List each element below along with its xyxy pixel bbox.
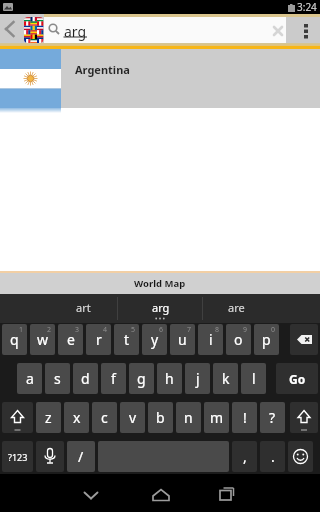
- button[interactable]: n: [176, 402, 201, 433]
- button[interactable]: c: [92, 402, 117, 433]
- staticText: m: [210, 408, 224, 427]
- button[interactable]: arg: [44, 17, 286, 43]
- button[interactable]: art: [0, 294, 118, 323]
- button[interactable]: a: [17, 363, 42, 394]
- button[interactable]: i: [198, 324, 223, 355]
- staticText: 1: [19, 325, 24, 335]
- button[interactable]: !: [232, 402, 257, 433]
- staticText: ?: [269, 408, 276, 427]
- button[interactable]: q: [2, 324, 27, 355]
- button[interactable]: s: [45, 363, 70, 394]
- staticText: s: [54, 369, 61, 388]
- button[interactable]: x: [64, 402, 89, 433]
- button[interactable]: h: [157, 363, 182, 394]
- staticText: w: [37, 330, 49, 349]
- button[interactable]: ,: [232, 441, 257, 472]
- staticText: z: [45, 408, 52, 427]
- button[interactable]: u: [170, 324, 195, 355]
- button[interactable]: m: [204, 402, 229, 433]
- button[interactable]: [0, 14, 44, 43]
- staticText: 0: [271, 325, 276, 335]
- staticText: i: [209, 330, 213, 349]
- button[interactable]: w: [30, 324, 55, 355]
- staticText: 7: [187, 325, 192, 335]
- button[interactable]: p: [254, 324, 279, 355]
- button[interactable]: z: [36, 402, 61, 433]
- button[interactable]: v: [120, 402, 145, 433]
- staticText: d: [81, 369, 90, 388]
- button[interactable]: t: [114, 324, 139, 355]
- staticText: art: [76, 300, 91, 315]
- button[interactable]: [290, 402, 318, 433]
- staticText: 8: [215, 325, 220, 335]
- button[interactable]: are: [203, 294, 320, 323]
- button[interactable]: World Map: [0, 273, 320, 294]
- staticText: 5: [131, 325, 136, 335]
- staticText: 3: [75, 325, 80, 335]
- button[interactable]: [290, 324, 318, 355]
- button[interactable]: ?123: [2, 441, 33, 472]
- staticText: b: [156, 408, 165, 427]
- staticText: ,: [243, 447, 247, 466]
- button[interactable]: b: [148, 402, 173, 433]
- button[interactable]: o: [226, 324, 251, 355]
- staticText: ?123: [8, 451, 28, 463]
- button[interactable]: Argentina: [0, 49, 320, 108]
- button[interactable]: k: [213, 363, 238, 394]
- staticText: p: [262, 330, 271, 349]
- staticText: a: [26, 369, 34, 388]
- staticText: c: [101, 408, 108, 427]
- staticText: y: [151, 330, 159, 349]
- staticText: o: [234, 330, 243, 349]
- button[interactable]: Go: [276, 363, 318, 394]
- staticText: arg: [64, 22, 87, 41]
- staticText: l: [252, 369, 256, 388]
- staticText: h: [165, 369, 174, 388]
- staticText: !: [243, 408, 247, 427]
- button[interactable]: .: [260, 441, 285, 472]
- staticText: 6: [159, 325, 164, 335]
- staticText: /: [78, 447, 84, 466]
- staticText: g: [137, 369, 146, 388]
- button[interactable]: ?: [260, 402, 285, 433]
- button[interactable]: j: [185, 363, 210, 394]
- button[interactable]: f: [101, 363, 126, 394]
- button[interactable]: arg: [118, 294, 203, 323]
- staticText: r: [96, 330, 102, 349]
- staticText: 9: [243, 325, 248, 335]
- staticText: Argentina: [75, 62, 130, 77]
- staticText: n: [184, 408, 193, 427]
- staticText: World Map: [134, 277, 186, 290]
- staticText: k: [222, 369, 230, 388]
- button[interactable]: [286, 17, 320, 43]
- button[interactable]: g: [129, 363, 154, 394]
- staticText: t: [124, 330, 130, 349]
- staticText: v: [129, 408, 137, 427]
- staticText: x: [73, 408, 81, 427]
- staticText: are: [228, 300, 245, 315]
- staticText: j: [196, 369, 200, 388]
- button[interactable]: y: [142, 324, 167, 355]
- button[interactable]: [0, 474, 106, 512]
- button[interactable]: [213, 474, 320, 512]
- button[interactable]: l: [241, 363, 266, 394]
- button[interactable]: [2, 402, 33, 433]
- staticText: 3:24: [297, 0, 317, 14]
- button[interactable]: [106, 474, 213, 512]
- button[interactable]: [36, 441, 64, 472]
- button[interactable]: [288, 441, 313, 472]
- staticText: 2: [47, 325, 52, 335]
- button[interactable]: /: [67, 441, 95, 472]
- staticText: f: [111, 369, 116, 388]
- staticText: .: [271, 447, 275, 466]
- button[interactable]: d: [73, 363, 98, 394]
- staticText: Go: [289, 371, 306, 387]
- staticText: u: [178, 330, 187, 349]
- staticText: e: [67, 330, 75, 349]
- button[interactable]: e: [58, 324, 83, 355]
- staticText: arg: [152, 300, 170, 315]
- staticText: q: [10, 330, 19, 349]
- staticText: 4: [103, 325, 108, 335]
- button[interactable]: r: [86, 324, 111, 355]
